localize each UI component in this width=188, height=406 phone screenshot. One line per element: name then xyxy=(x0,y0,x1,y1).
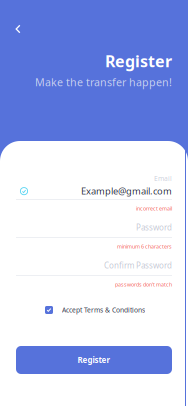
staticText: minimum 6 characters xyxy=(117,243,172,250)
button[interactable]: Accept Terms & Conditions xyxy=(41,302,161,318)
staticText: Register xyxy=(105,50,172,72)
staticText: Password xyxy=(136,222,172,233)
staticText: Accept Terms & Conditions xyxy=(62,306,145,314)
staticText: incorrect email xyxy=(136,205,172,212)
staticText: Example@gmail.com xyxy=(81,185,172,197)
staticText: Register xyxy=(77,355,110,365)
staticText: Make the transfer happen! xyxy=(35,75,172,89)
staticText: Confirm Password xyxy=(104,260,172,271)
button[interactable]: Register xyxy=(16,346,172,374)
button[interactable]: Back xyxy=(8,19,28,39)
staticText: Email xyxy=(154,174,172,183)
staticText: passwords don't match xyxy=(115,281,172,288)
